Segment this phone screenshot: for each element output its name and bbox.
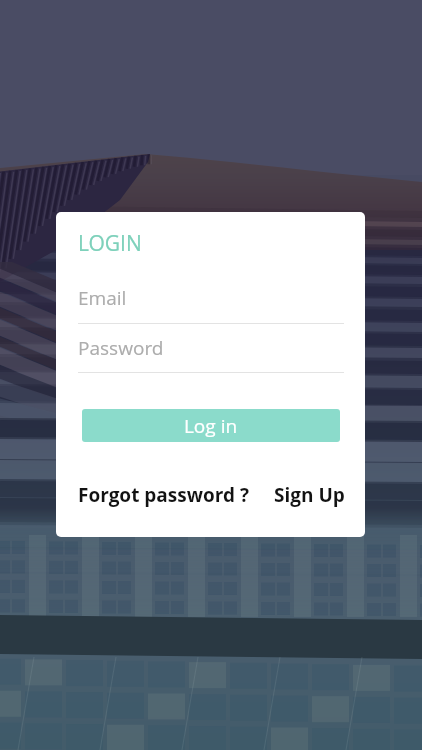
button[interactable]: Log in	[82, 409, 340, 442]
staticText: Password	[78, 335, 164, 361]
staticText: Log in	[184, 413, 238, 439]
staticText: Forgot password ?	[78, 482, 249, 508]
button[interactable]: Forgot password ?	[78, 482, 249, 508]
staticText: LOGIN	[78, 229, 142, 258]
staticText: Sign Up	[274, 482, 345, 508]
button[interactable]: Sign Up	[274, 482, 345, 508]
staticText: Email	[78, 285, 127, 311]
